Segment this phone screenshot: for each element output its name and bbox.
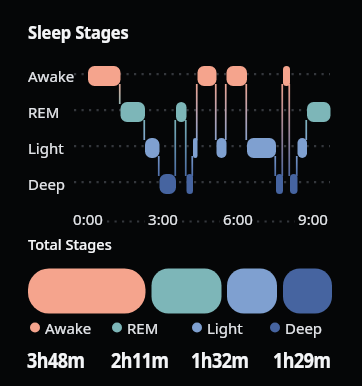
staticText: REM xyxy=(127,318,159,338)
staticText: 1h29m xyxy=(273,346,331,375)
staticText: 3:00 xyxy=(148,209,178,229)
staticText: Total Stages xyxy=(28,234,112,254)
staticText: 2h11m xyxy=(111,346,169,375)
staticText: 6:00 xyxy=(223,209,253,229)
staticText: Deep xyxy=(285,318,323,338)
staticText: 0:00 xyxy=(73,209,103,229)
staticText: Light xyxy=(28,138,64,158)
staticText: Light xyxy=(207,318,243,338)
staticText: Sleep Stages xyxy=(28,20,129,44)
staticText: 1h32m xyxy=(191,346,249,375)
staticText: 3h48m xyxy=(27,346,85,375)
staticText: Awake xyxy=(45,318,92,338)
staticText: Awake xyxy=(28,66,75,86)
staticText: REM xyxy=(28,102,60,122)
staticText: 9:00 xyxy=(298,209,328,229)
staticText: Deep xyxy=(28,174,66,194)
